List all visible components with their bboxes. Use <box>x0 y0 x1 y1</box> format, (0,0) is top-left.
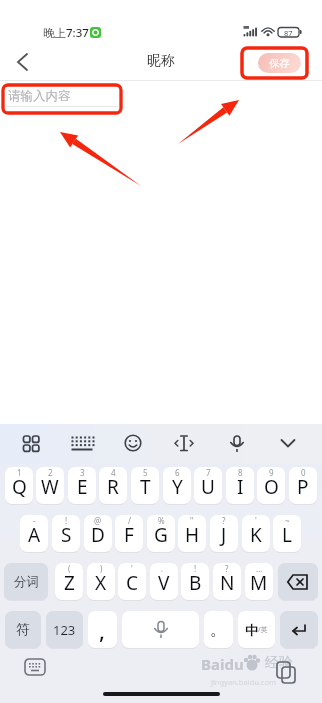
button[interactable] <box>61 426 103 460</box>
button[interactable]: 、 <box>150 563 178 600</box>
staticText: ' <box>131 563 133 574</box>
staticText: jingyan.baidu.com <box>211 677 276 687</box>
button[interactable]: , <box>88 611 117 648</box>
button[interactable]: 1 <box>5 467 33 504</box>
button[interactable]: ! <box>181 563 209 600</box>
staticText: 经验 <box>265 654 293 672</box>
staticText: E <box>77 474 88 500</box>
button[interactable]: 123 <box>46 611 83 648</box>
staticText: 。 <box>210 619 227 640</box>
staticText: 7 <box>206 467 211 478</box>
staticText: 1 <box>17 467 22 478</box>
button[interactable]: 。 <box>204 611 233 648</box>
button[interactable]: 9 <box>257 467 285 504</box>
button[interactable]: 6 <box>163 467 191 504</box>
button[interactable]: / <box>115 515 143 552</box>
staticText: 符 <box>16 621 30 638</box>
button[interactable]: ~ <box>273 515 301 552</box>
button[interactable]: 请输入内容 <box>6 85 120 111</box>
staticText: Q <box>12 474 27 500</box>
button[interactable]: 中 <box>238 611 275 648</box>
staticText: 6 <box>175 467 180 478</box>
staticText: … <box>256 563 263 574</box>
staticText: V <box>158 570 170 596</box>
button[interactable]: 2 <box>36 467 64 504</box>
staticText: ' <box>255 515 257 526</box>
staticText: Z <box>64 570 75 596</box>
staticText: 87 <box>284 28 293 38</box>
staticText: H <box>185 522 200 548</box>
staticText: 123 <box>53 621 76 639</box>
button[interactable] <box>24 657 48 679</box>
staticText: T <box>140 474 151 500</box>
staticText: 2 <box>48 467 53 478</box>
button[interactable]: ) <box>87 563 115 600</box>
button[interactable]: - <box>20 515 48 552</box>
button[interactable] <box>112 426 154 460</box>
button[interactable]: ? <box>210 515 238 552</box>
button[interactable] <box>10 426 52 460</box>
staticText: 、 <box>160 563 168 573</box>
button[interactable] <box>6 46 42 78</box>
button[interactable]: 保存 <box>258 53 301 73</box>
staticText: B <box>189 570 202 596</box>
button[interactable]: ' <box>118 563 146 600</box>
staticText: N <box>220 570 235 596</box>
button[interactable]: 3 <box>68 467 96 504</box>
staticText: 0 <box>301 467 306 478</box>
button[interactable]: 0 <box>289 467 317 504</box>
button[interactable] <box>163 426 205 460</box>
staticText: , <box>99 615 106 645</box>
staticText: @ <box>94 515 102 526</box>
staticText: F <box>124 522 134 548</box>
staticText: G <box>154 522 168 548</box>
staticText: M <box>250 570 268 596</box>
staticText: J <box>221 522 227 548</box>
staticText: Y <box>172 474 183 500</box>
staticText: 8 <box>238 467 243 478</box>
staticText: 4 <box>111 467 116 478</box>
button[interactable]: 分词 <box>4 563 48 600</box>
staticText: C <box>126 570 139 596</box>
staticText: 保存 <box>269 57 290 70</box>
staticText: ( <box>68 563 71 574</box>
button[interactable]: ( <box>55 563 83 600</box>
staticText: - <box>33 515 36 526</box>
button[interactable]: 7 <box>194 467 222 504</box>
staticText: A <box>28 522 41 548</box>
button[interactable]: 4 <box>99 467 127 504</box>
staticText: O <box>264 474 279 500</box>
button[interactable] <box>278 563 318 600</box>
button[interactable] <box>216 426 258 460</box>
staticText: 晚上7:37 <box>43 25 89 41</box>
staticText: ? <box>222 515 226 526</box>
staticText: P <box>297 474 309 500</box>
staticText: L <box>282 522 292 548</box>
button[interactable]: 5 <box>131 467 159 504</box>
button[interactable] <box>267 426 309 460</box>
button[interactable]: 8 <box>226 467 254 504</box>
staticText: X <box>95 570 107 596</box>
staticText: 请输入内容 <box>8 88 71 104</box>
staticText: D <box>91 522 105 548</box>
button[interactable]: ? <box>213 563 241 600</box>
button[interactable]: … <box>245 563 273 600</box>
button[interactable] <box>122 611 199 648</box>
staticText: 3 <box>80 467 85 478</box>
staticText: ! <box>194 563 197 574</box>
staticText: 分词 <box>14 574 39 590</box>
button[interactable]: ! <box>52 515 80 552</box>
button[interactable]: " <box>178 515 206 552</box>
button[interactable]: @ <box>84 515 112 552</box>
staticText: W <box>41 474 59 500</box>
staticText: ~ <box>285 515 290 526</box>
button[interactable] <box>280 611 318 648</box>
staticText: 5 <box>143 467 148 478</box>
button[interactable]: 符 <box>5 611 41 648</box>
staticText: Baidu <box>201 654 244 674</box>
button[interactable]: ' <box>242 515 270 552</box>
staticText: S <box>61 522 72 548</box>
staticText: ! <box>65 515 68 526</box>
button[interactable]: % <box>147 515 175 552</box>
staticText: U <box>201 474 215 500</box>
